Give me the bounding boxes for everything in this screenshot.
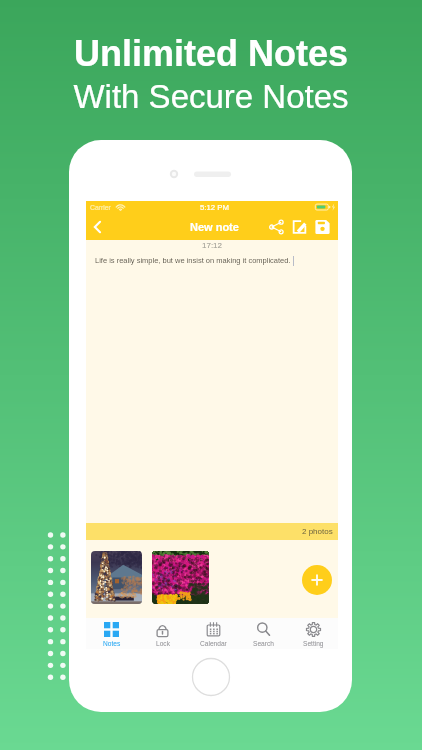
staticText: Carrier xyxy=(90,204,111,212)
staticText: Search xyxy=(253,640,274,647)
staticText: 2 photos xyxy=(302,527,333,536)
button[interactable]: Search xyxy=(238,618,288,649)
staticText: Setting xyxy=(303,640,324,647)
button[interactable]: Calendar xyxy=(188,618,238,649)
staticText: Life is really simple, but we insist on … xyxy=(95,256,291,264)
staticText: 5:12 PM xyxy=(200,203,230,212)
button[interactable]: Notes xyxy=(86,618,137,649)
button[interactable]: Add note xyxy=(302,565,332,595)
staticText: Lock xyxy=(156,640,170,647)
button[interactable]: Edit xyxy=(288,214,311,240)
button[interactable]: Share xyxy=(265,214,288,240)
button[interactable]: Back xyxy=(86,214,108,240)
staticText: With Secure Notes xyxy=(0,78,422,115)
button[interactable]: Save xyxy=(311,214,334,240)
staticText: Calendar xyxy=(200,640,227,647)
button[interactable]: Lock xyxy=(137,618,188,649)
button[interactable]: Photo of pink flowers xyxy=(152,551,209,604)
staticText: Unlimited Notes xyxy=(0,33,422,73)
staticText: Notes xyxy=(103,640,121,647)
button[interactable]: Photo of Christmas tree xyxy=(91,551,142,604)
button[interactable]: Setting xyxy=(288,618,338,649)
staticText: New note xyxy=(190,221,239,233)
staticText: 17:12 xyxy=(202,241,223,250)
